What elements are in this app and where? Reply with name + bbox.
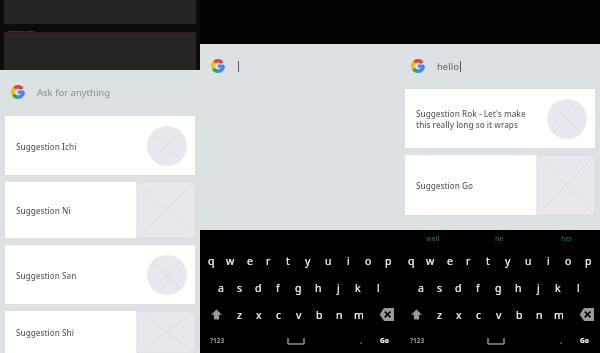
button[interactable]: s: [230, 274, 249, 301]
staticText: he: [495, 234, 504, 244]
button[interactable]: .: [351, 328, 371, 353]
button[interactable]: l: [568, 274, 588, 301]
button[interactable]: Suggestion San: [5, 245, 195, 304]
button[interactable]: r: [459, 247, 478, 274]
button[interactable]: ?123: [202, 328, 233, 353]
button[interactable]: Go: [371, 328, 398, 353]
button[interactable]: e: [440, 247, 459, 274]
button[interactable]: Suggestion Ni: [5, 182, 195, 238]
staticText: v: [296, 308, 302, 322]
staticText: y: [505, 254, 511, 268]
button[interactable]: h: [308, 274, 328, 301]
button[interactable]: c: [269, 301, 289, 328]
button[interactable]: u: [518, 247, 538, 274]
button[interactable]: p: [378, 247, 398, 274]
button[interactable]: Suggestion Ichi: [5, 116, 195, 175]
staticText: z: [237, 308, 242, 322]
button[interactable]: g: [488, 274, 508, 301]
button[interactable]: d: [249, 274, 268, 301]
button[interactable]: m: [549, 301, 569, 328]
button[interactable]: her: [533, 230, 600, 247]
button[interactable]: u: [318, 247, 338, 274]
button[interactable]: i: [338, 247, 358, 274]
staticText: q: [208, 254, 215, 268]
button[interactable]: g: [288, 274, 308, 301]
staticText: her: [561, 234, 573, 244]
button[interactable]: x: [249, 301, 269, 328]
staticText: d: [255, 281, 262, 295]
button[interactable]: hello: [400, 44, 600, 88]
button[interactable]: n: [329, 301, 349, 328]
staticText: s: [437, 281, 443, 295]
button[interactable]: h: [508, 274, 528, 301]
staticText: r: [466, 254, 471, 268]
staticText: Suggestion Rok - Let's make this really …: [416, 108, 539, 130]
button[interactable]: z: [430, 301, 449, 328]
button[interactable]: Backspace: [369, 301, 398, 328]
button[interactable]: [200, 44, 400, 88]
button[interactable]: f: [268, 274, 288, 301]
staticText: i: [347, 254, 350, 268]
button[interactable]: b: [509, 301, 529, 328]
button[interactable]: b: [309, 301, 329, 328]
button[interactable]: j: [528, 274, 548, 301]
staticText: m: [354, 308, 364, 322]
button[interactable]: y: [498, 247, 518, 274]
button[interactable]: v: [489, 301, 509, 328]
button[interactable]: q: [202, 247, 221, 274]
button[interactable]: Shift: [202, 301, 230, 328]
staticText: h: [315, 281, 322, 295]
button[interactable]: m: [349, 301, 369, 328]
button[interactable]: d: [449, 274, 468, 301]
button[interactable]: Space: [464, 328, 527, 353]
button[interactable]: .: [551, 328, 571, 353]
button[interactable]: o: [558, 247, 578, 274]
staticText: ?123: [210, 336, 225, 345]
button[interactable]: s: [430, 274, 449, 301]
staticText: l: [577, 281, 580, 295]
button[interactable]: q: [402, 247, 421, 274]
button[interactable]: Suggestion Shi: [5, 311, 195, 353]
staticText: a: [218, 281, 224, 295]
button[interactable]: k: [348, 274, 368, 301]
button[interactable]: r: [259, 247, 278, 274]
button[interactable]: w: [421, 247, 440, 274]
button[interactable]: w: [221, 247, 240, 274]
button[interactable]: p: [578, 247, 598, 274]
staticText: n: [336, 308, 343, 322]
button[interactable]: v: [289, 301, 309, 328]
button[interactable]: l: [368, 274, 388, 301]
button[interactable]: Ask for anything: [0, 70, 200, 114]
button[interactable]: t: [478, 247, 498, 274]
staticText: b: [516, 308, 523, 322]
button[interactable]: Suggestion Rok - Let's make this really …: [405, 89, 595, 148]
staticText: y: [305, 254, 311, 268]
button[interactable]: j: [328, 274, 348, 301]
button[interactable]: e: [240, 247, 259, 274]
button[interactable]: Go: [571, 328, 598, 353]
button[interactable]: a: [211, 274, 230, 301]
button[interactable]: o: [358, 247, 378, 274]
button[interactable]: Suggestion Go: [405, 155, 595, 215]
staticText: x: [256, 308, 262, 322]
button[interactable]: he: [466, 230, 533, 247]
staticText: x: [456, 308, 462, 322]
button[interactable]: Space: [264, 328, 327, 353]
staticText: a: [418, 281, 424, 295]
button[interactable]: Backspace: [569, 301, 598, 328]
button[interactable]: z: [230, 301, 249, 328]
staticText: f: [276, 281, 280, 295]
button[interactable]: t: [278, 247, 298, 274]
button[interactable]: a: [411, 274, 430, 301]
button[interactable]: n: [529, 301, 549, 328]
button[interactable]: f: [468, 274, 488, 301]
button[interactable]: k: [548, 274, 568, 301]
button[interactable]: well: [400, 230, 466, 247]
staticText: k: [355, 281, 361, 295]
button[interactable]: c: [469, 301, 489, 328]
button[interactable]: Shift: [402, 301, 430, 328]
button[interactable]: x: [449, 301, 469, 328]
button[interactable]: ?123: [402, 328, 433, 353]
button[interactable]: i: [538, 247, 558, 274]
button[interactable]: y: [298, 247, 318, 274]
